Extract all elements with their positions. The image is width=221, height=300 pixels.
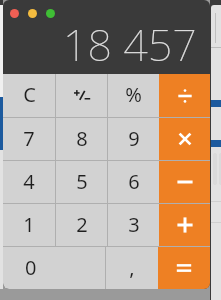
staticText: 2 bbox=[76, 211, 88, 238]
button[interactable]: 6 bbox=[108, 161, 159, 203]
button[interactable]: Add bbox=[159, 204, 210, 246]
staticText: 7 bbox=[23, 125, 35, 152]
button[interactable]: Equals bbox=[158, 247, 210, 289]
staticText: , bbox=[129, 254, 135, 281]
staticText: 3 bbox=[128, 211, 140, 238]
button[interactable]: 8 bbox=[56, 118, 107, 160]
button[interactable]: % bbox=[108, 74, 159, 117]
button[interactable]: 0 bbox=[3, 247, 105, 289]
button[interactable]: 1 bbox=[3, 204, 55, 246]
button[interactable]: , bbox=[106, 247, 158, 289]
staticText: 8 bbox=[76, 125, 88, 152]
staticText: % bbox=[125, 81, 142, 108]
staticText: 1 bbox=[23, 211, 35, 238]
button[interactable]: C bbox=[3, 74, 55, 117]
staticText: C bbox=[23, 81, 36, 108]
staticText: 6 bbox=[128, 168, 140, 195]
staticText: 4 bbox=[23, 168, 35, 195]
button[interactable]: 9 bbox=[108, 118, 159, 160]
staticText: 18 457 bbox=[63, 15, 197, 74]
button[interactable]: 4 bbox=[3, 161, 55, 203]
button[interactable]: 7 bbox=[3, 118, 55, 160]
staticText: 9 bbox=[128, 125, 140, 152]
button[interactable]: 2 bbox=[56, 204, 107, 246]
button[interactable]: Divide bbox=[159, 74, 210, 117]
button[interactable]: Plus minus bbox=[56, 74, 107, 117]
button[interactable]: 5 bbox=[56, 161, 107, 203]
staticText: 0 bbox=[25, 254, 37, 281]
button[interactable]: Multiply bbox=[159, 118, 210, 160]
button[interactable]: 3 bbox=[108, 204, 159, 246]
staticText: 5 bbox=[76, 168, 88, 195]
button[interactable]: Subtract bbox=[159, 161, 210, 203]
